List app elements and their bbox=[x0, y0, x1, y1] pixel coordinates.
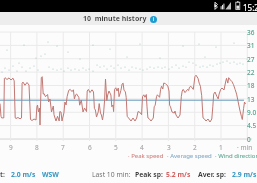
staticText: · Peak speed bbox=[128, 152, 164, 160]
staticText: 5 bbox=[114, 143, 118, 152]
staticText: 3 bbox=[167, 143, 171, 152]
staticText: Last 10 min: bbox=[92, 170, 131, 179]
staticText: 15:2 bbox=[243, 2, 257, 13]
other: Info bbox=[150, 16, 157, 23]
staticText: 8 bbox=[35, 143, 39, 152]
staticText: 9.0 bbox=[247, 108, 257, 117]
staticText: 7 bbox=[61, 143, 65, 152]
staticText: 1 bbox=[219, 143, 223, 152]
staticText: · Average speed bbox=[167, 152, 212, 160]
staticText: Peak sp: bbox=[135, 170, 163, 179]
staticText: t: bbox=[0, 170, 5, 179]
staticText: 5.2 m/s bbox=[166, 170, 191, 179]
staticText: i bbox=[153, 16, 155, 23]
staticText: Aver. sp: bbox=[198, 170, 226, 179]
staticText: 22 bbox=[247, 68, 255, 77]
button[interactable]: 10 minute history bbox=[0, 12, 257, 25]
staticText: 2.0 m/s bbox=[11, 170, 36, 179]
staticText: · min bbox=[237, 143, 253, 152]
staticText: 27 bbox=[247, 55, 255, 64]
staticText: 0 bbox=[247, 135, 251, 144]
staticText: 4.5 bbox=[247, 121, 257, 130]
staticText: 36 bbox=[247, 28, 255, 37]
staticText: 18 bbox=[247, 81, 255, 90]
staticText: 31 bbox=[247, 41, 255, 50]
staticText: 9 bbox=[9, 143, 13, 152]
staticText: 6 bbox=[88, 143, 92, 152]
staticText: · Wind direction bbox=[215, 152, 257, 160]
staticText: WSW bbox=[42, 170, 59, 179]
staticText: 2.9 m/s bbox=[232, 170, 257, 179]
staticText: 13 bbox=[247, 95, 255, 104]
staticText: 2 bbox=[193, 143, 197, 152]
staticText: 4 bbox=[140, 143, 144, 152]
staticText: 10 minute history bbox=[83, 14, 147, 24]
